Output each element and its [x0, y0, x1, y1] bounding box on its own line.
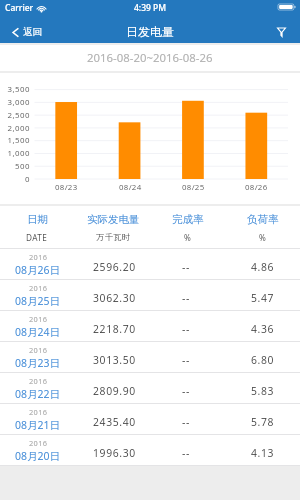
staticText: 5.78: [251, 415, 275, 429]
staticText: 4:39 PM: [134, 2, 167, 14]
staticText: --: [182, 384, 190, 398]
staticText: 日发电量: [126, 24, 174, 39]
staticText: DATE: [26, 232, 48, 243]
staticText: %: [259, 232, 267, 243]
staticText: --: [182, 260, 190, 274]
staticText: 08月24日: [15, 325, 61, 339]
staticText: --: [182, 322, 190, 336]
staticText: Carrier: [5, 2, 34, 14]
staticText: 08/26: [245, 182, 268, 193]
staticText: 2016: [29, 283, 48, 293]
staticText: 2,000: [7, 123, 30, 134]
button[interactable]: 2016: [0, 435, 300, 466]
staticText: 08/23: [55, 182, 78, 193]
staticText: 08月22日: [15, 387, 61, 401]
staticText: 0: [25, 174, 30, 185]
staticText: 2016: [29, 345, 48, 355]
button[interactable]: 2016: [0, 373, 300, 404]
staticText: 2016: [29, 407, 48, 417]
staticText: 2016: [29, 314, 48, 324]
staticText: 返回: [23, 26, 42, 38]
button[interactable]: 2016-08-20~2016-08-26: [0, 45, 300, 71]
staticText: 08月20日: [15, 449, 61, 463]
button[interactable]: 返回: [0, 26, 50, 38]
button[interactable]: 2016: [0, 249, 300, 280]
staticText: 6.80: [251, 353, 275, 367]
staticText: 08月21日: [15, 418, 61, 432]
staticText: 08/24: [119, 182, 142, 193]
staticText: 2016: [29, 252, 48, 262]
staticText: 5.47: [251, 291, 275, 305]
staticText: 3,000: [7, 97, 30, 108]
staticText: 3,500: [7, 84, 30, 95]
staticText: 3013.50: [93, 353, 136, 367]
button[interactable]: 2016: [0, 311, 300, 342]
staticText: 1,000: [7, 148, 30, 159]
staticText: 4.86: [251, 260, 275, 274]
staticText: 2809.90: [93, 384, 136, 398]
staticText: --: [182, 415, 190, 429]
staticText: 1996.30: [93, 446, 136, 460]
staticText: 3062.30: [93, 291, 136, 305]
staticText: 5.83: [251, 384, 275, 398]
staticText: 4.36: [251, 322, 275, 336]
staticText: 负荷率: [247, 213, 279, 226]
staticText: 2435.40: [93, 415, 136, 429]
staticText: 4.13: [251, 446, 275, 460]
staticText: 2596.20: [93, 260, 136, 274]
staticText: 2016: [29, 438, 48, 448]
button[interactable]: 2016: [0, 280, 300, 311]
staticText: 08月25日: [15, 294, 61, 308]
staticText: 日期: [27, 213, 48, 226]
staticText: 08/25: [182, 182, 205, 193]
button[interactable]: Filter: [277, 27, 300, 37]
staticText: --: [182, 446, 190, 460]
staticText: 500: [15, 161, 30, 172]
staticText: 2,500: [7, 110, 30, 121]
button[interactable]: 2016: [0, 342, 300, 373]
staticText: --: [182, 353, 190, 367]
staticText: --: [182, 291, 190, 305]
staticText: 1,500: [7, 135, 30, 146]
staticText: 2218.70: [93, 322, 136, 336]
staticText: 08月23日: [15, 356, 61, 370]
staticText: %: [184, 232, 192, 243]
staticText: 2016: [29, 376, 48, 386]
staticText: 完成率: [172, 213, 204, 226]
staticText: 2016-08-20~2016-08-26: [87, 50, 213, 66]
staticText: 万千瓦时: [96, 232, 131, 242]
button[interactable]: 2016: [0, 404, 300, 435]
staticText: 实际发电量: [87, 213, 140, 226]
staticText: 08月26日: [15, 263, 61, 277]
